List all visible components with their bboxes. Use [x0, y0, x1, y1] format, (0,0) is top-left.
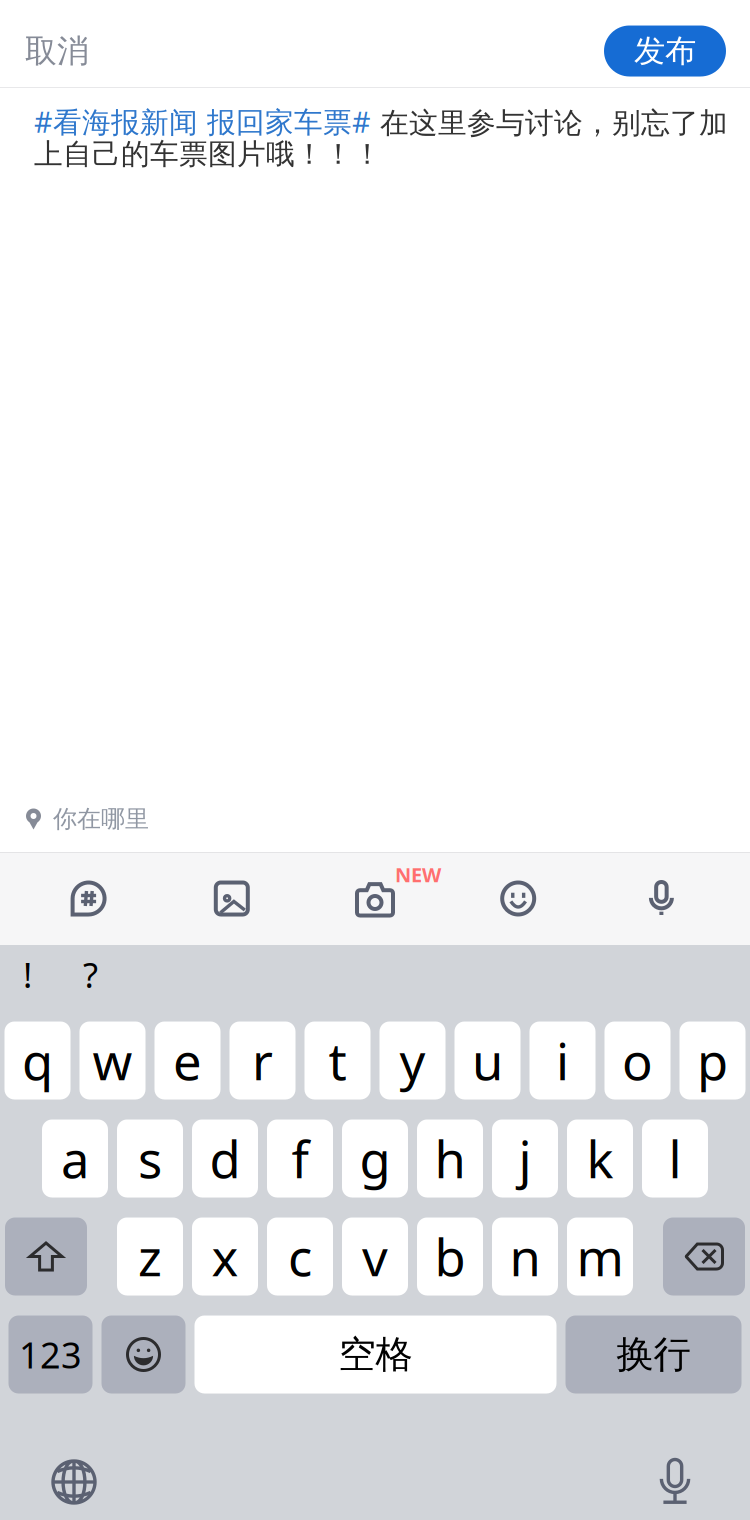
staticText: h: [434, 1125, 465, 1192]
staticText: z: [138, 1223, 162, 1290]
button[interactable]: 换行: [565, 1315, 741, 1393]
staticText: x: [211, 1223, 238, 1290]
staticText: g: [359, 1125, 390, 1192]
button[interactable]: f: [267, 1119, 333, 1197]
button[interactable]: o: [604, 1021, 670, 1099]
staticText: q: [22, 1027, 53, 1094]
button[interactable]: j: [492, 1119, 558, 1197]
button[interactable]: Emoji: [447, 852, 590, 945]
button[interactable]: 取消: [0, 14, 155, 88]
button[interactable]: e: [154, 1021, 220, 1099]
staticText: 上自己的车票图片哦！！！: [34, 136, 382, 172]
staticText: u: [472, 1027, 503, 1094]
staticText: d: [209, 1125, 240, 1192]
staticText: b: [434, 1223, 465, 1290]
button[interactable]: 你在哪里: [0, 786, 750, 852]
staticText: 空格: [338, 1332, 412, 1377]
staticText: v: [362, 1223, 388, 1290]
button[interactable]: Camera: [303, 852, 447, 945]
button[interactable]: s: [117, 1119, 183, 1197]
staticText: j: [518, 1125, 531, 1192]
button[interactable]: Topic: [17, 852, 160, 945]
staticText: 取消: [25, 31, 89, 71]
button[interactable]: v: [342, 1217, 408, 1295]
button[interactable]: !: [0, 928, 55, 1020]
button[interactable]: Delete: [663, 1217, 745, 1295]
staticText: k: [586, 1125, 613, 1192]
staticText: s: [138, 1125, 162, 1192]
button[interactable]: m: [567, 1217, 633, 1295]
button[interactable]: n: [492, 1217, 558, 1295]
button[interactable]: p: [679, 1021, 745, 1099]
button[interactable]: Emoji keyboard: [101, 1315, 185, 1393]
button[interactable]: l: [642, 1119, 708, 1197]
button[interactable]: Voice: [590, 852, 733, 945]
staticText: 你在哪里: [53, 804, 149, 834]
staticText: f: [291, 1125, 308, 1192]
button[interactable]: Photos: [160, 852, 303, 945]
button[interactable]: b: [417, 1217, 483, 1295]
button[interactable]: c: [267, 1217, 333, 1295]
staticText: 发布: [634, 31, 696, 71]
button[interactable]: g: [342, 1119, 408, 1197]
staticText: 123: [19, 1331, 82, 1378]
button[interactable]: 空格: [194, 1315, 556, 1393]
button[interactable]: ?: [55, 928, 126, 1020]
staticText: w: [92, 1027, 132, 1094]
staticText: a: [61, 1125, 89, 1192]
staticText: #看海报新闻 报回家车票#: [34, 102, 371, 141]
staticText: m: [576, 1223, 623, 1290]
button[interactable]: q: [4, 1021, 70, 1099]
button[interactable]: w: [79, 1021, 145, 1099]
button[interactable]: y: [379, 1021, 445, 1099]
staticText: r: [252, 1027, 273, 1094]
staticText: ?: [83, 951, 98, 998]
button[interactable]: Dictation: [620, 1426, 730, 1520]
staticText: NEW: [395, 861, 441, 888]
button[interactable]: a: [42, 1119, 108, 1197]
staticText: t: [328, 1027, 346, 1094]
staticText: e: [173, 1027, 202, 1094]
button[interactable]: t: [304, 1021, 370, 1099]
button[interactable]: Shift: [5, 1217, 87, 1295]
staticText: c: [288, 1223, 312, 1290]
staticText: p: [697, 1027, 728, 1094]
staticText: 换行: [616, 1332, 690, 1377]
button[interactable]: i: [529, 1021, 595, 1099]
button[interactable]: 123: [8, 1315, 92, 1393]
staticText: n: [509, 1223, 540, 1290]
button[interactable]: d: [192, 1119, 258, 1197]
button[interactable]: x: [192, 1217, 258, 1295]
button[interactable]: z: [117, 1217, 183, 1295]
button[interactable]: Switch keyboard: [19, 1426, 129, 1520]
button[interactable]: 发布: [604, 14, 750, 88]
staticText: i: [556, 1027, 569, 1094]
staticText: 在这里参与讨论，别忘了加: [371, 105, 728, 141]
staticText: y: [399, 1027, 425, 1094]
staticText: o: [622, 1027, 653, 1094]
button[interactable]: u: [454, 1021, 520, 1099]
button[interactable]: r: [229, 1021, 295, 1099]
button[interactable]: k: [567, 1119, 633, 1197]
staticText: l: [668, 1125, 681, 1192]
button[interactable]: h: [417, 1119, 483, 1197]
staticText: !: [23, 951, 32, 998]
